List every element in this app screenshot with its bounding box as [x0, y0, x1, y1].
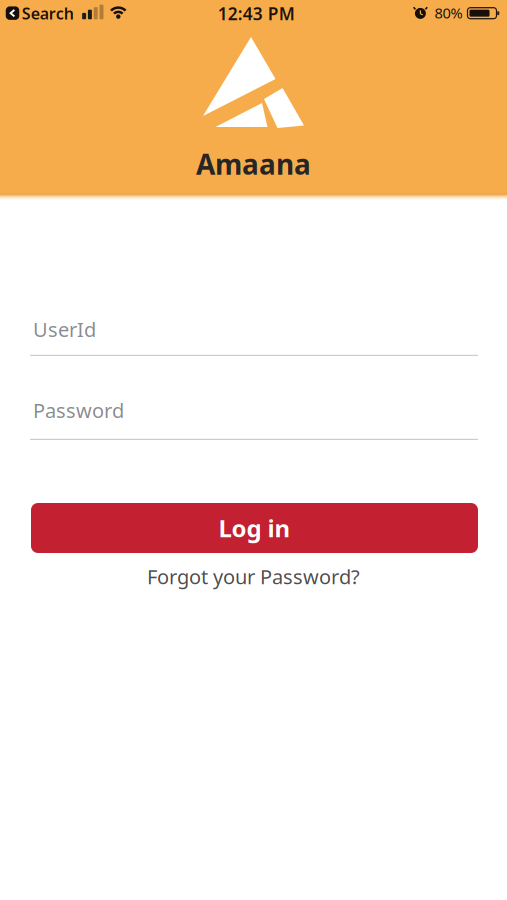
staticText: Forgot your Password?: [147, 563, 360, 590]
button[interactable]: UserId: [30, 316, 478, 356]
staticText: 12:43 PM: [218, 2, 295, 25]
staticText: Search: [22, 3, 74, 24]
staticText: UserId: [33, 316, 96, 343]
staticText: Log in: [218, 512, 290, 544]
button[interactable]: Log in: [31, 503, 478, 553]
button[interactable]: Forgot your Password?: [147, 563, 360, 590]
button[interactable]: Password: [30, 397, 478, 440]
staticText: Password: [33, 397, 124, 424]
button[interactable]: Search: [0, 0, 78, 26]
staticText: Amaana: [196, 145, 311, 183]
staticText: 80%: [434, 3, 462, 23]
